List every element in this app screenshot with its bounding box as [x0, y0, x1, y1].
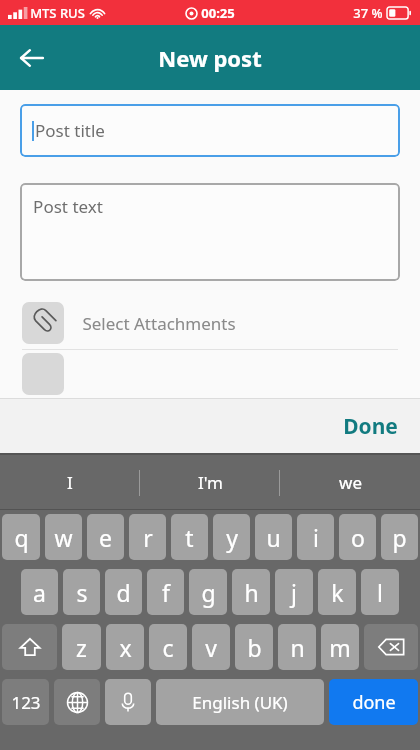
staticText: e: [99, 522, 112, 553]
button[interactable]: f: [147, 569, 184, 615]
button[interactable]: v: [192, 624, 230, 670]
button[interactable]: Shift: [2, 624, 57, 670]
button[interactable]: j: [275, 569, 313, 615]
button[interactable]: p: [381, 514, 418, 560]
staticText: d: [116, 577, 131, 608]
staticText: Post title: [35, 119, 105, 142]
button[interactable]: Post text: [20, 183, 400, 281]
button[interactable]: Voice input: [105, 679, 151, 725]
staticText: Post text: [33, 195, 103, 218]
staticText: r: [143, 522, 153, 553]
staticText: h: [244, 577, 259, 608]
staticText: o: [351, 522, 365, 553]
staticText: q: [14, 522, 29, 553]
button[interactable]: d: [105, 569, 142, 615]
button[interactable]: 123: [2, 679, 49, 725]
button[interactable]: e: [87, 514, 124, 560]
button[interactable]: u: [255, 514, 292, 560]
button[interactable]: Done: [321, 404, 420, 449]
button[interactable]: z: [62, 624, 101, 670]
button[interactable]: Select Attachments: [0, 297, 420, 349]
staticText: y: [226, 522, 238, 553]
button[interactable]: o: [339, 514, 376, 560]
button[interactable]: I'm: [140, 455, 280, 510]
button[interactable]: g: [189, 569, 227, 615]
button[interactable]: s: [63, 569, 100, 615]
staticText: 00:25: [201, 4, 235, 22]
staticText: MTS RUS: [30, 4, 85, 22]
button[interactable]: h: [232, 569, 270, 615]
staticText: b: [247, 632, 262, 663]
staticText: c: [162, 632, 174, 663]
button[interactable]: Back: [8, 34, 56, 82]
button[interactable]: c: [149, 624, 187, 670]
button[interactable]: b: [235, 624, 273, 670]
button[interactable]: Post title: [20, 104, 400, 157]
staticText: we: [339, 471, 362, 494]
button[interactable]: w: [45, 514, 82, 560]
staticText: k: [331, 577, 344, 608]
button[interactable]: k: [318, 569, 356, 615]
staticText: New post: [158, 43, 262, 73]
staticText: n: [290, 632, 305, 663]
button[interactable]: a: [21, 569, 58, 615]
staticText: j: [291, 577, 297, 608]
button[interactable]: r: [129, 514, 166, 560]
staticText: English (UK): [192, 691, 288, 714]
staticText: p: [392, 522, 407, 553]
staticText: f: [162, 577, 170, 608]
button[interactable]: [0, 350, 420, 398]
button[interactable]: Backspace: [364, 624, 418, 670]
button[interactable]: done: [329, 679, 418, 725]
staticText: t: [185, 522, 194, 553]
button[interactable]: q: [2, 514, 40, 560]
staticText: s: [76, 577, 88, 608]
staticText: g: [201, 577, 216, 608]
button[interactable]: x: [106, 624, 144, 670]
staticText: 37 %: [353, 4, 383, 22]
staticText: m: [329, 632, 351, 663]
staticText: u: [266, 522, 281, 553]
button[interactable]: English (UK): [156, 679, 324, 725]
staticText: w: [54, 522, 73, 553]
button[interactable]: l: [361, 569, 399, 615]
button[interactable]: m: [321, 624, 359, 670]
button[interactable]: Change keyboard language: [54, 679, 100, 725]
staticText: x: [119, 632, 132, 663]
staticText: l: [377, 577, 383, 608]
staticText: z: [76, 632, 87, 663]
button[interactable]: t: [171, 514, 208, 560]
staticText: v: [205, 632, 217, 663]
staticText: Done: [343, 412, 398, 441]
staticText: 123: [11, 691, 41, 714]
button[interactable]: y: [213, 514, 250, 560]
staticText: I'm: [198, 471, 223, 494]
staticText: Select Attachments: [82, 312, 236, 335]
staticText: I: [67, 471, 73, 494]
staticText: i: [313, 522, 319, 553]
button[interactable]: I: [0, 455, 140, 510]
staticText: a: [33, 577, 46, 608]
button[interactable]: n: [278, 624, 316, 670]
staticText: done: [352, 690, 396, 715]
button[interactable]: i: [297, 514, 334, 560]
button[interactable]: we: [280, 455, 420, 510]
